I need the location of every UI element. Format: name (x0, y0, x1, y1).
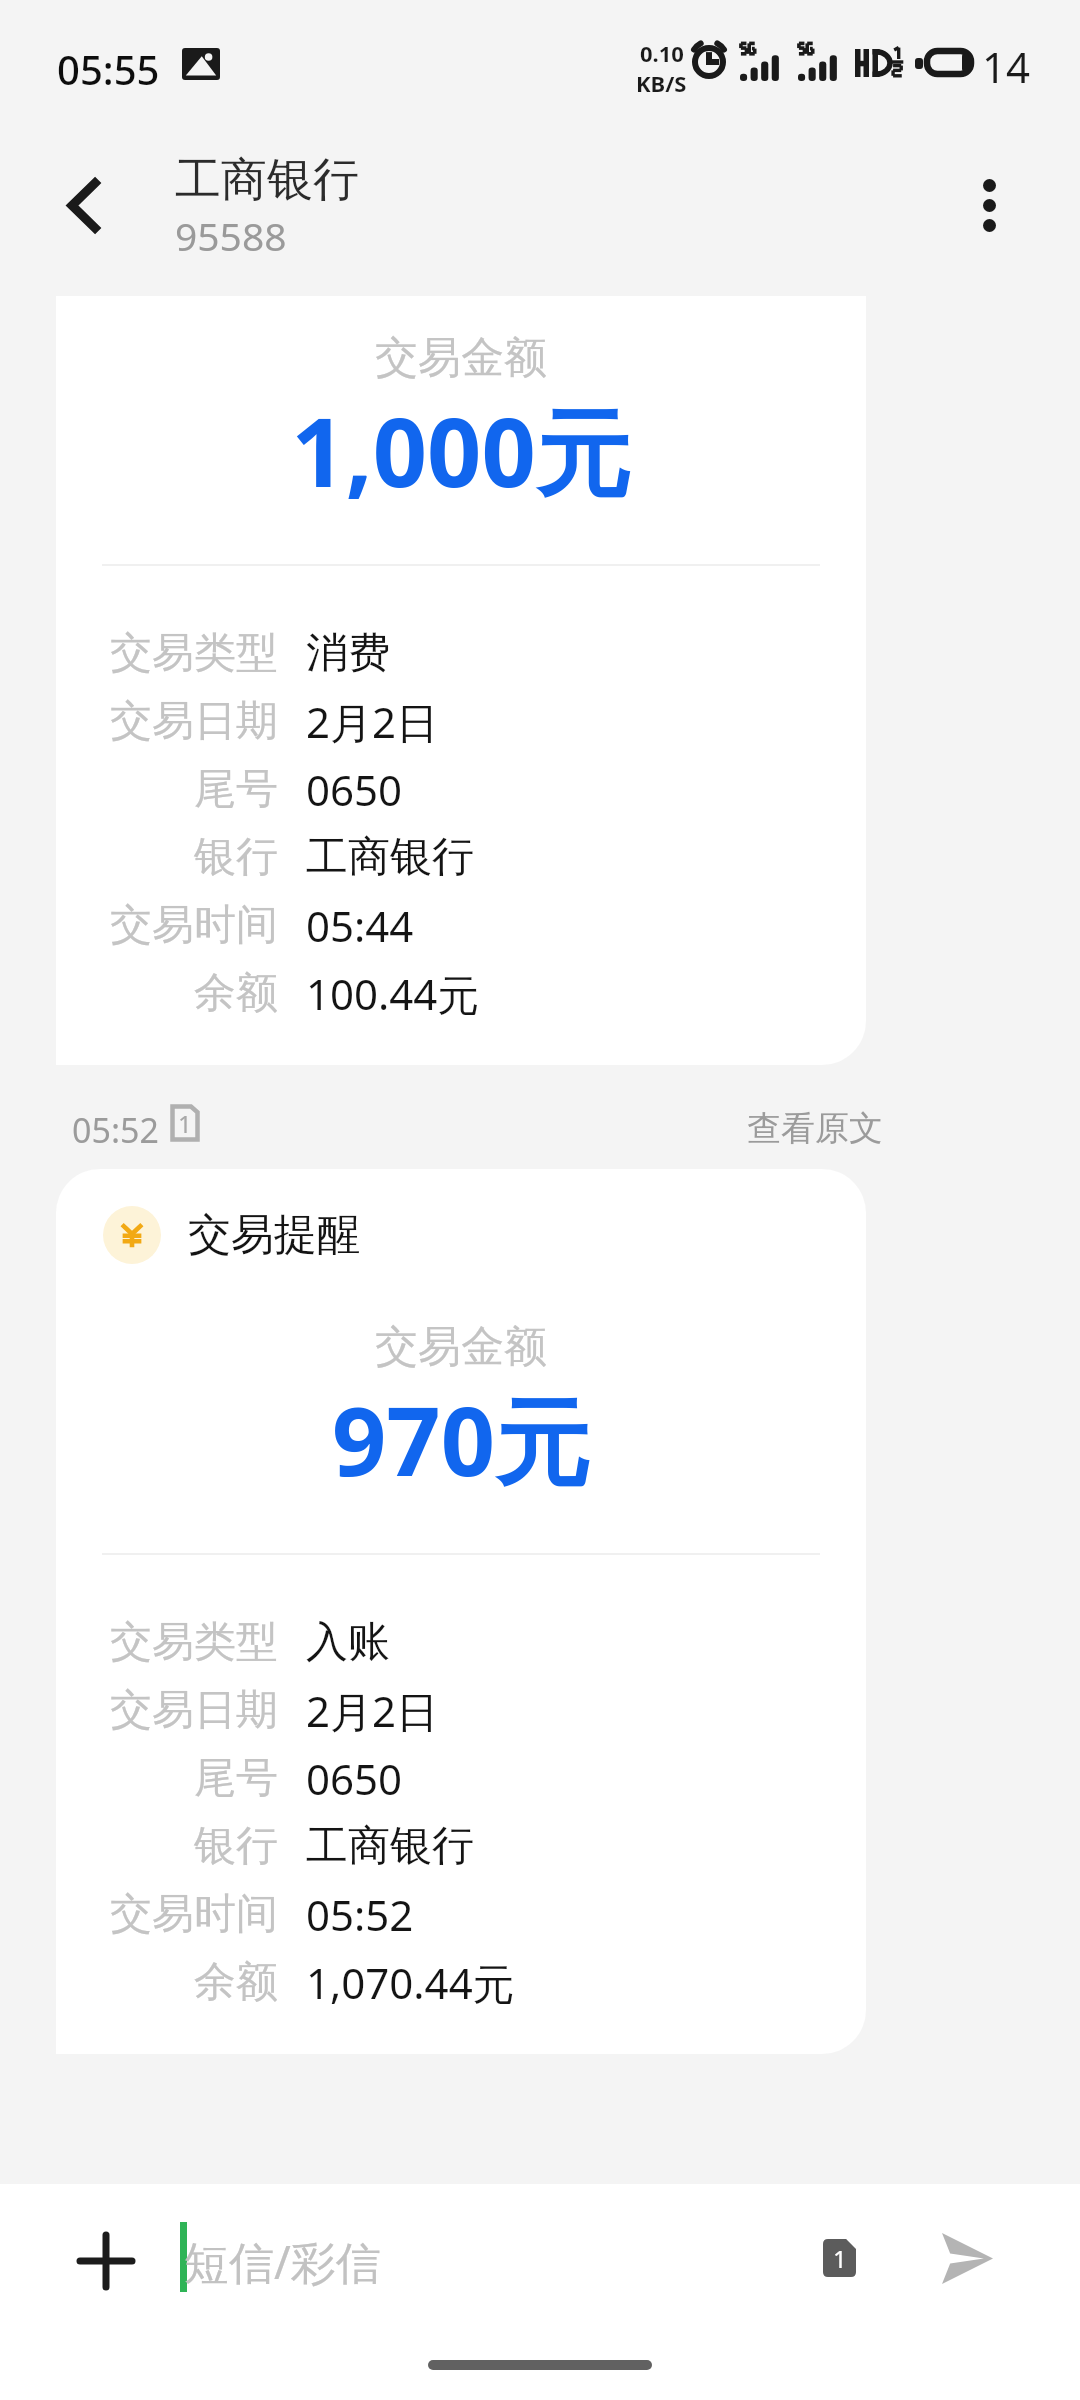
staticText: 95588 (175, 209, 287, 262)
staticText: 交易类型 (110, 1616, 278, 1669)
staticText: 1 (178, 1107, 192, 1140)
staticText: 交易金额 (56, 331, 866, 385)
staticText: 交易类型 (110, 627, 278, 680)
staticText: 工商银行 (306, 831, 474, 884)
staticText: 交易时间 (110, 899, 278, 952)
staticText: 1,070.44元 (306, 1954, 515, 2011)
staticText: 余额 (194, 1956, 278, 2009)
staticText: 短信/彩信 (184, 2231, 381, 2292)
button[interactable]: Add attachment (51, 2206, 161, 2316)
staticText: 2月2日 (306, 1682, 439, 1739)
staticText: 银行 (194, 831, 278, 884)
staticText: 05:52 (72, 1107, 159, 1153)
staticText: 交易时间 (110, 1888, 278, 1941)
staticText: 970元 (56, 1374, 866, 1504)
staticText: 尾号 (194, 763, 278, 816)
staticText: 1,000元 (56, 385, 866, 515)
staticText: KB/S (636, 68, 687, 98)
button[interactable]: 交易金额 (56, 296, 866, 1065)
staticText: 100.44元 (306, 965, 480, 1022)
staticText: 工商银行 (306, 1820, 474, 1873)
staticText: 05:44 (306, 897, 414, 954)
staticText: 05:55 (57, 42, 160, 96)
staticText: 0650 (306, 761, 403, 818)
staticText: 消费 (306, 627, 390, 680)
staticText: 银行 (194, 1820, 278, 1873)
staticText: 交易提醒 (188, 1208, 360, 1262)
staticText: 尾号 (194, 1752, 278, 1805)
button[interactable]: Send (912, 2203, 1022, 2313)
staticText: 0.10 (640, 38, 684, 68)
staticText: 余额 (194, 967, 278, 1020)
button[interactable]: Back (22, 144, 144, 266)
staticText: 入账 (306, 1616, 390, 1669)
staticText: 14 (982, 38, 1031, 95)
button[interactable]: SIM 1 (823, 2239, 856, 2277)
staticText: 交易日期 (110, 695, 278, 748)
staticText: 交易金额 (56, 1320, 866, 1374)
staticText: 2月2日 (306, 693, 439, 750)
button[interactable]: More options (928, 144, 1050, 266)
button[interactable]: 查看原文 (747, 1107, 883, 1150)
staticText: 05:52 (306, 1886, 414, 1943)
staticText: 工商银行 (175, 151, 359, 209)
staticText: 1 (833, 2242, 847, 2275)
staticText: 交易日期 (110, 1684, 278, 1737)
button[interactable]: 交易提醒 (56, 1169, 866, 2054)
staticText: 0650 (306, 1750, 403, 1807)
